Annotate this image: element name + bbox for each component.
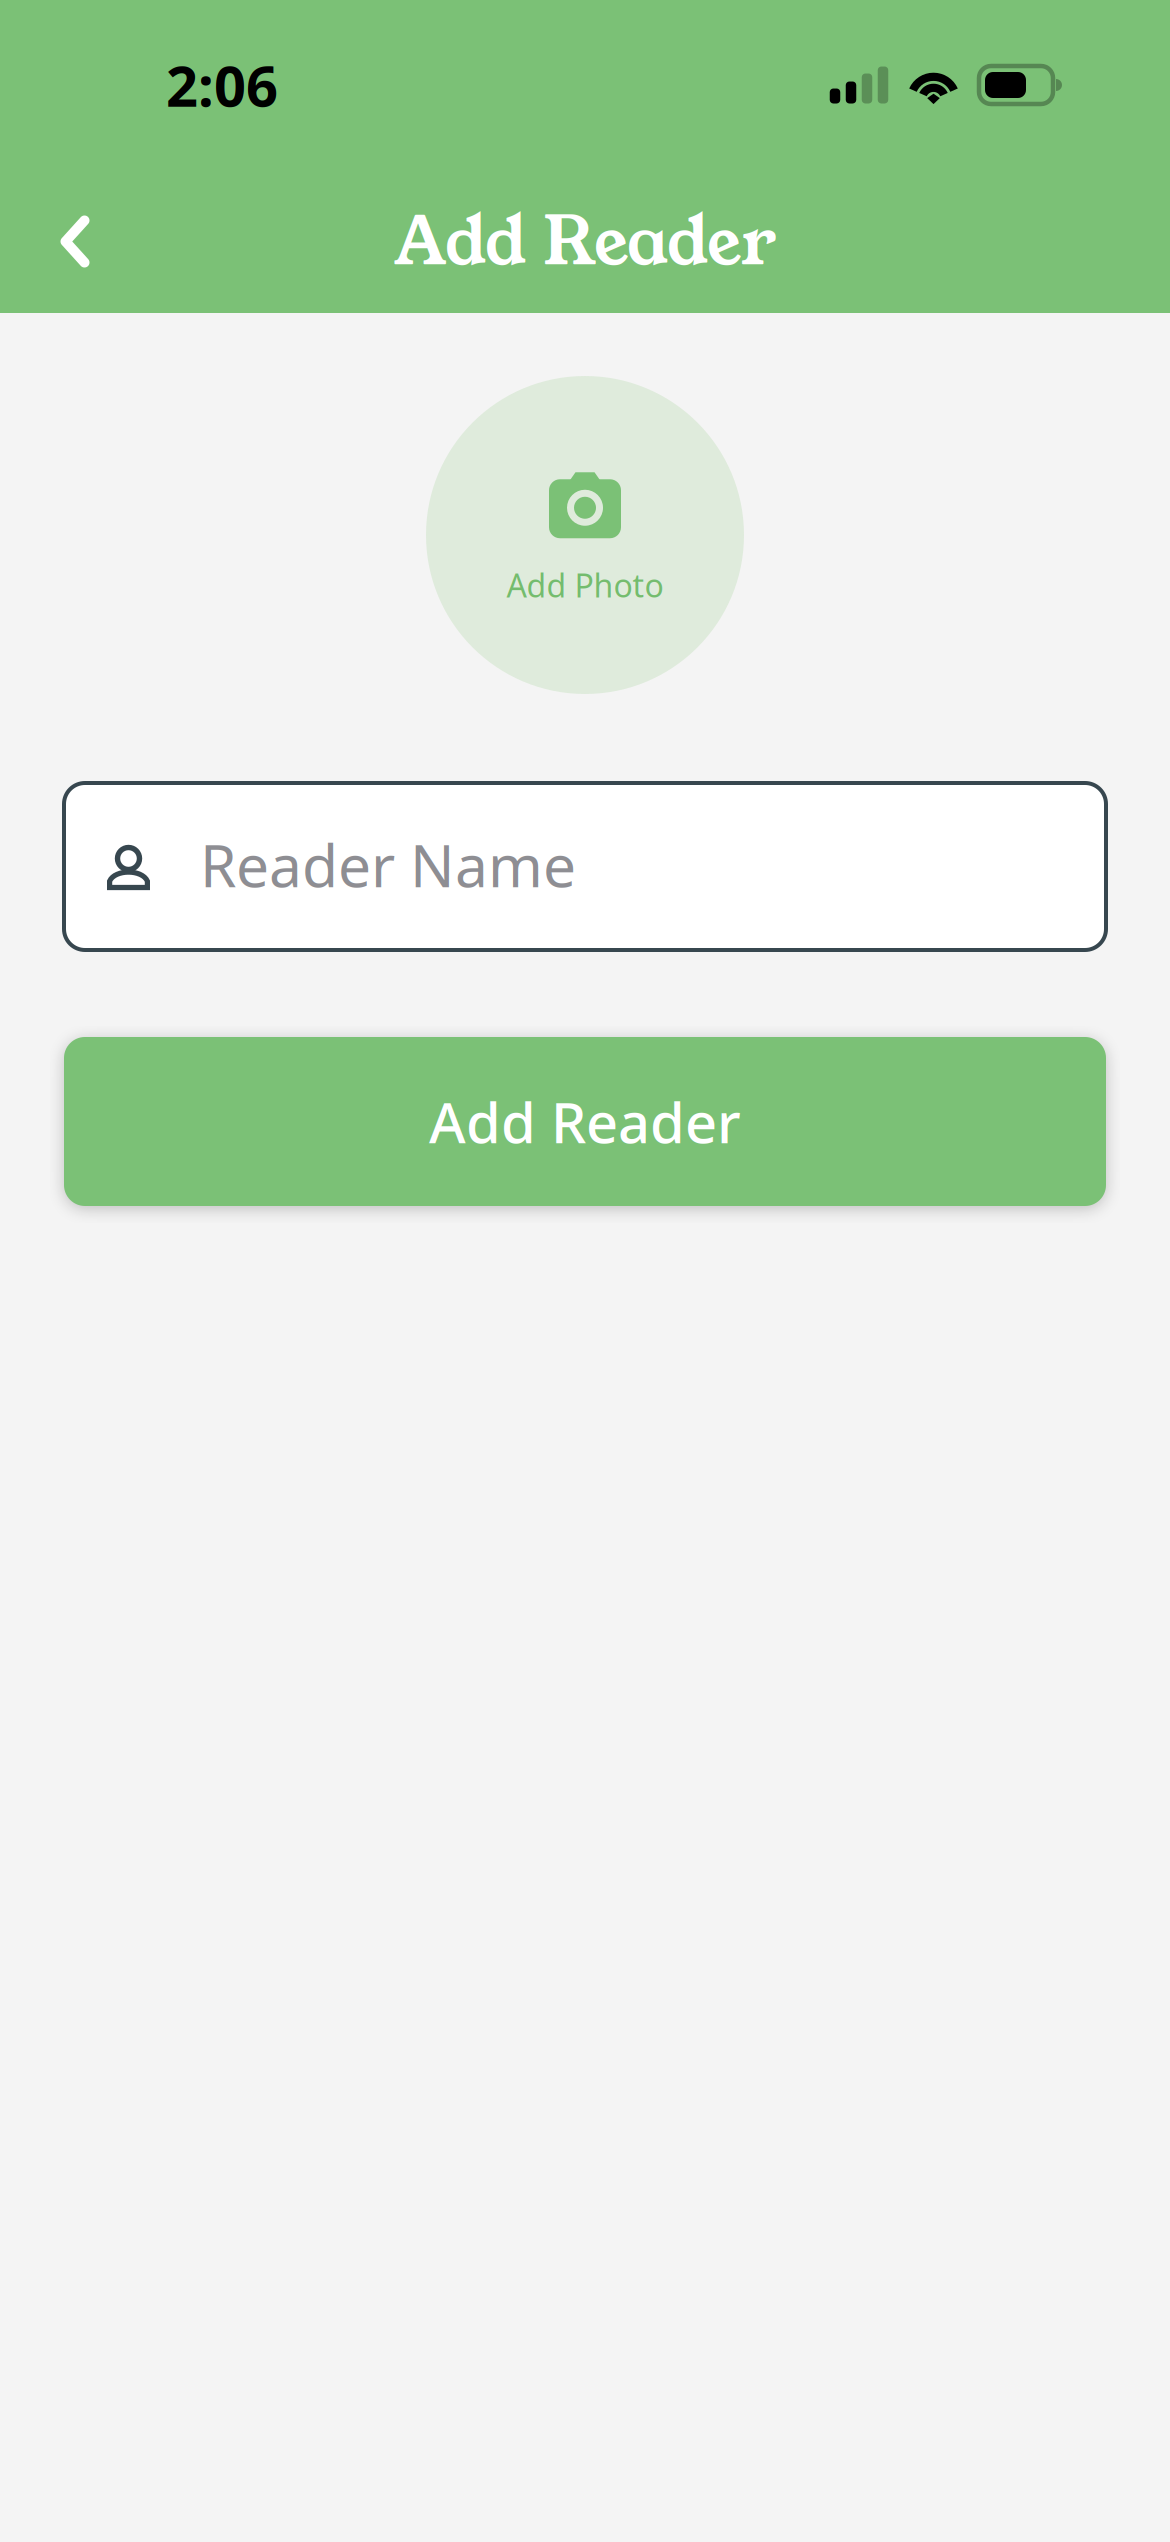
staticText: Add Photo	[506, 564, 663, 606]
button[interactable]: Add Photo	[426, 376, 744, 694]
button[interactable]: Add Reader	[64, 1037, 1106, 1206]
button[interactable]: Back	[20, 186, 130, 296]
staticText: 2:06	[166, 48, 278, 122]
staticText: Add Reader	[394, 194, 776, 288]
button[interactable]: Reader Name	[64, 783, 1106, 950]
staticText: Add Reader	[429, 1084, 741, 1159]
staticText: Reader Name	[200, 825, 576, 903]
